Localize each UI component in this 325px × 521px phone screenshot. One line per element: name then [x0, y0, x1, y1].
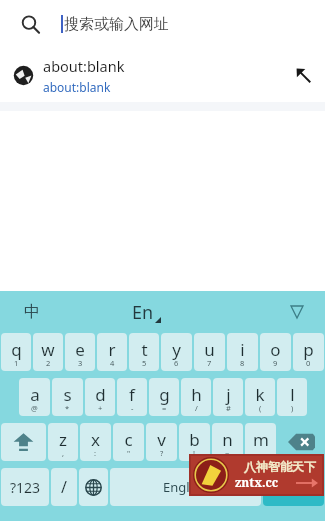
button[interactable]: Backspace	[278, 423, 324, 461]
staticText: b	[189, 428, 200, 451]
button[interactable]: 中	[16, 296, 48, 328]
staticText: o	[270, 338, 281, 361]
staticText: "	[127, 448, 131, 458]
button[interactable]: r	[97, 333, 127, 371]
staticText: about:blank	[43, 79, 111, 95]
staticText: 7	[207, 358, 212, 368]
staticText: 搜索或输入网址	[64, 15, 169, 34]
button[interactable]: Search	[0, 0, 325, 48]
staticText: j	[226, 383, 231, 406]
button[interactable]: s	[52, 378, 83, 416]
button[interactable]: Hide keyboard	[283, 298, 311, 326]
button[interactable]: En	[132, 300, 161, 325]
staticText: p	[303, 338, 314, 361]
button[interactable]: Shift	[1, 423, 46, 461]
staticText: a	[30, 383, 40, 406]
staticText: /	[61, 476, 67, 498]
button[interactable]: y	[161, 333, 192, 371]
staticText: ~	[225, 448, 230, 458]
staticText: d	[95, 383, 106, 406]
button[interactable]: l	[277, 378, 307, 416]
staticText: /	[195, 403, 198, 413]
button[interactable]: p	[293, 333, 324, 371]
button[interactable]: j	[213, 378, 243, 416]
button[interactable]: Insert suggestion into omnibox	[285, 57, 321, 93]
button[interactable]: g	[149, 378, 179, 416]
staticText: 2	[46, 358, 51, 368]
staticText: ?	[160, 448, 164, 458]
button[interactable]: m	[245, 423, 276, 461]
button[interactable]: t	[129, 333, 159, 371]
staticText: k	[255, 383, 265, 406]
button[interactable]: n	[212, 423, 243, 461]
button[interactable]: z	[48, 423, 78, 461]
staticText: En	[132, 300, 154, 325]
staticText: #	[226, 403, 231, 413]
staticText: !	[193, 448, 196, 458]
staticText: (	[259, 403, 262, 413]
staticText: q	[11, 338, 22, 361]
staticText: g	[159, 383, 170, 406]
button[interactable]: f	[117, 378, 147, 416]
button[interactable]: about:blank	[0, 48, 325, 102]
staticText: z	[59, 428, 67, 451]
staticText: 1	[14, 358, 19, 368]
button[interactable]: c	[113, 423, 144, 461]
staticText: n	[222, 428, 233, 451]
staticText: v	[157, 428, 166, 451]
staticText: f	[129, 383, 135, 406]
staticText: 八神智能天下	[244, 459, 316, 474]
button[interactable]: x	[80, 423, 111, 461]
staticText: ?123	[10, 478, 41, 497]
button[interactable]: e	[65, 333, 95, 371]
other: Search	[21, 15, 40, 34]
staticText: 0	[306, 358, 311, 368]
staticText: *	[65, 403, 70, 413]
staticText: 3	[78, 358, 83, 368]
staticText: @	[31, 403, 38, 413]
staticText: _	[259, 448, 263, 458]
staticText: =	[162, 403, 167, 413]
staticText: +	[98, 403, 103, 413]
staticText: 中	[24, 302, 40, 322]
button[interactable]: a	[19, 378, 50, 416]
staticText: 5	[142, 358, 147, 368]
staticText: 9	[273, 358, 278, 368]
staticText: about:blank	[43, 56, 125, 76]
staticText: 8	[240, 358, 245, 368]
staticText: zntx.cc	[235, 474, 279, 490]
button[interactable]: d	[85, 378, 115, 416]
staticText: 4	[110, 358, 115, 368]
staticText: h	[191, 383, 202, 406]
staticText: -	[131, 403, 134, 413]
button[interactable]: k	[245, 378, 275, 416]
staticText: y	[172, 338, 181, 361]
staticText: l	[290, 383, 295, 406]
button[interactable]: ?123	[1, 468, 49, 506]
staticText: e	[75, 338, 85, 361]
button[interactable]: i	[227, 333, 258, 371]
button[interactable]: v	[146, 423, 177, 461]
button[interactable]: b	[179, 423, 210, 461]
staticText: ,	[62, 448, 65, 458]
button[interactable]: u	[194, 333, 225, 371]
staticText: x	[91, 428, 100, 451]
staticText: )	[291, 403, 294, 413]
button[interactable]: w	[33, 333, 63, 371]
button[interactable]: English	[110, 468, 261, 506]
staticText: English	[163, 478, 208, 496]
staticText: i	[240, 338, 245, 361]
staticText: t	[141, 338, 148, 361]
button[interactable]: o	[260, 333, 291, 371]
staticText: u	[204, 338, 215, 361]
staticText: s	[63, 383, 72, 406]
button[interactable]: Go	[263, 468, 324, 506]
button[interactable]: Switch input language	[79, 468, 108, 506]
button[interactable]: /	[51, 468, 77, 506]
staticText: c	[124, 428, 133, 451]
staticText: r	[108, 338, 116, 361]
button[interactable]: q	[1, 333, 31, 371]
staticText: :	[94, 448, 97, 458]
button[interactable]: h	[181, 378, 211, 416]
staticText: w	[41, 338, 55, 361]
